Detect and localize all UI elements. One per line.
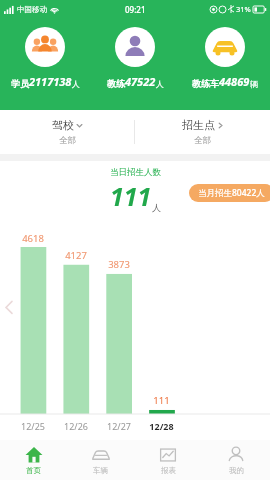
staticText: 2117138 bbox=[29, 74, 72, 89]
button[interactable]: 我的 bbox=[202, 440, 270, 480]
button[interactable]: 车辆 bbox=[67, 440, 134, 480]
staticText: 111 bbox=[153, 394, 170, 407]
staticText: 学员 bbox=[11, 78, 29, 89]
staticText: 3873 bbox=[108, 258, 130, 271]
staticText: 12/25 bbox=[21, 420, 45, 432]
staticText: 教练车 bbox=[192, 78, 219, 89]
button[interactable]: 4618 bbox=[0, 219, 270, 440]
staticText: 招生点 bbox=[182, 118, 215, 132]
staticText: 全部 bbox=[194, 135, 211, 146]
staticText: 全部 bbox=[59, 135, 76, 146]
staticText: 111 bbox=[110, 179, 152, 213]
staticText: 辆 bbox=[250, 79, 258, 89]
button[interactable]: 首页 bbox=[0, 440, 67, 480]
staticText: 人 bbox=[72, 79, 80, 89]
staticText: 首页 bbox=[26, 466, 41, 475]
staticText: 44869 bbox=[219, 74, 250, 89]
staticText: 中国移动 bbox=[17, 5, 47, 14]
staticText: 4127 bbox=[65, 249, 87, 262]
button[interactable]: 报表 bbox=[134, 440, 202, 480]
staticText: 12/27 bbox=[107, 420, 131, 432]
staticText: 31% bbox=[236, 4, 251, 14]
staticText: 我的 bbox=[229, 466, 244, 475]
staticText: 12/26 bbox=[64, 420, 88, 432]
button[interactable]: 教练 bbox=[90, 18, 180, 89]
staticText: 09:21 bbox=[125, 4, 146, 15]
staticText: 当日招生人数 bbox=[110, 167, 161, 178]
staticText: 人 bbox=[152, 202, 161, 213]
staticText: 教练 bbox=[107, 78, 125, 89]
staticText: 当月招生80422人 bbox=[198, 187, 265, 199]
button[interactable]: 学员 bbox=[0, 18, 90, 89]
button[interactable]: 驾校 bbox=[0, 110, 134, 154]
staticText: 人 bbox=[156, 79, 164, 89]
staticText: 4618 bbox=[22, 232, 44, 245]
staticText: 车辆 bbox=[93, 466, 108, 475]
button[interactable]: 教练车 bbox=[180, 18, 270, 89]
staticText: 驾校 bbox=[52, 118, 74, 132]
button[interactable]: 当月招生80422人 bbox=[189, 184, 270, 202]
staticText: 12/28 bbox=[149, 420, 174, 432]
staticText: 47522 bbox=[125, 74, 156, 89]
staticText: 报表 bbox=[161, 466, 176, 475]
button[interactable]: 招生点 bbox=[135, 110, 270, 154]
